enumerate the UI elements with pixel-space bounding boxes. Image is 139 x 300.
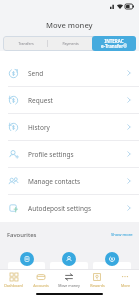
staticText: Rewards bbox=[90, 283, 105, 288]
button[interactable]: History bbox=[0, 114, 139, 140]
button[interactable]: Send bbox=[0, 60, 139, 86]
button[interactable]: Autodeposit settings bbox=[0, 195, 139, 221]
button[interactable]: Profile settings bbox=[0, 141, 139, 167]
staticText: History bbox=[28, 123, 50, 132]
staticText: Autodeposit settings bbox=[28, 204, 92, 213]
button[interactable]: Payments bbox=[48, 36, 92, 51]
button[interactable]: Show more bbox=[111, 232, 133, 238]
button[interactable]: Alex R. bbox=[93, 248, 131, 271]
button[interactable]: Dashboard bbox=[0, 270, 27, 290]
button[interactable]: Transfers bbox=[3, 36, 48, 51]
staticText: Sam T. bbox=[63, 268, 75, 271]
staticText: More bbox=[121, 283, 130, 288]
staticText: Alex R. bbox=[106, 268, 118, 271]
button[interactable]: More bbox=[111, 270, 139, 290]
staticText: Accounts bbox=[33, 283, 49, 288]
button[interactable]: INTERAC e-Transfer® bbox=[92, 36, 136, 51]
staticText: Move money bbox=[46, 20, 93, 30]
staticText: Manage contacts bbox=[28, 177, 81, 186]
staticText: Show more bbox=[111, 232, 133, 238]
button[interactable]: Manage contacts bbox=[0, 168, 139, 194]
button[interactable]: Sam T. bbox=[50, 248, 88, 271]
staticText: Transfers bbox=[18, 41, 34, 46]
staticText: Send bbox=[28, 69, 44, 78]
staticText: Move money bbox=[58, 283, 80, 288]
button[interactable]: Move money bbox=[55, 270, 83, 290]
staticText: Request bbox=[28, 96, 53, 105]
staticText: INTERAC e-Transfer® bbox=[101, 38, 127, 49]
staticText: Dashboard bbox=[4, 283, 23, 288]
button[interactable]: Jenna M. bbox=[8, 248, 45, 271]
button[interactable]: Accounts bbox=[27, 270, 55, 290]
staticText: Profile settings bbox=[28, 150, 74, 159]
button[interactable]: Rewards bbox=[83, 270, 111, 290]
staticText: Payments bbox=[62, 41, 79, 46]
button[interactable]: Request bbox=[0, 87, 139, 113]
staticText: Favourites bbox=[7, 231, 37, 239]
staticText: Jenna M. bbox=[19, 268, 34, 271]
